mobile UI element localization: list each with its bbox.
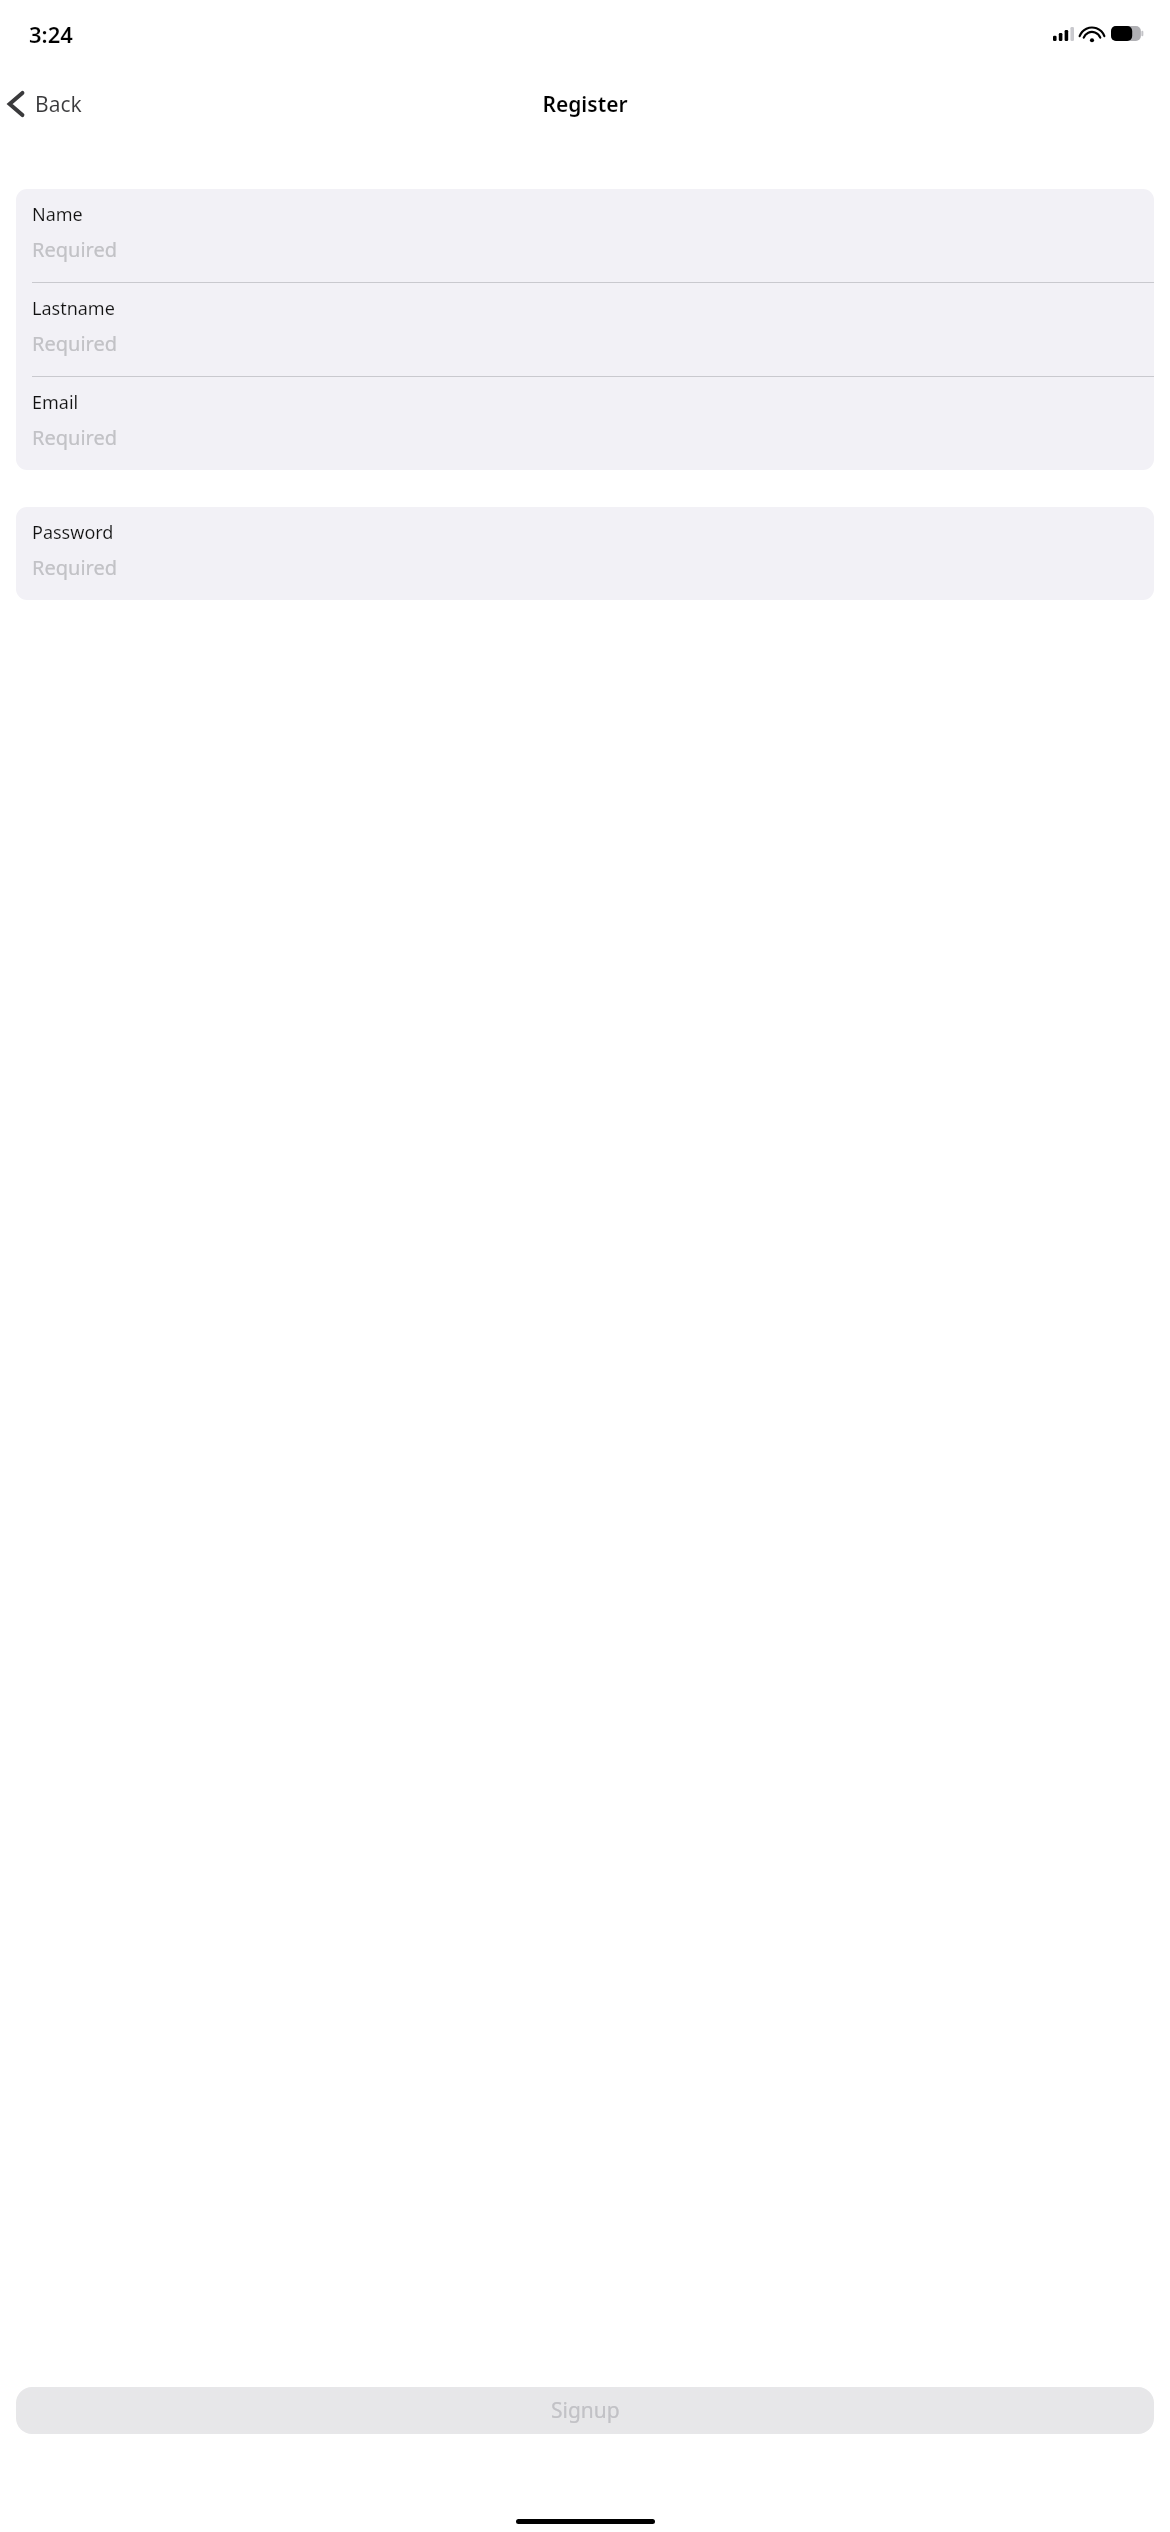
staticText: 3:24 [29, 19, 73, 49]
staticText: Email [32, 390, 79, 415]
staticText: Name [32, 202, 83, 227]
staticText: Required [32, 554, 117, 581]
staticText: Required [32, 424, 117, 451]
other: Back [6, 89, 26, 119]
staticText: Required [32, 236, 117, 263]
staticText: Lastname [32, 296, 115, 321]
staticText: Signup [551, 2396, 620, 2425]
staticText: Password [32, 520, 114, 545]
staticText: Register [542, 90, 628, 119]
staticText: Required [32, 330, 117, 357]
button[interactable]: Back [0, 83, 94, 125]
button[interactable]: Lastname [16, 283, 1154, 376]
button[interactable]: Email [16, 377, 1154, 470]
button[interactable]: Name [16, 189, 1154, 282]
staticText: Back [35, 90, 82, 119]
button[interactable]: Password [16, 507, 1154, 600]
button[interactable]: Signup [16, 2387, 1154, 2434]
